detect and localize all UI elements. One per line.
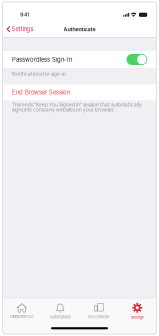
staticText: Notifications [50,315,71,319]
staticText: 9:41 [20,12,29,17]
button[interactable]: Settings [2,23,38,35]
staticText: End Browser Session [12,89,70,96]
staticText: Settings [131,315,144,319]
staticText: My Devices [88,314,109,319]
staticText: MobileIron Go [10,314,33,319]
button[interactable]: Settings [118,298,156,322]
staticText: Authenticate [63,26,95,32]
button[interactable]: End Browser Session [2,84,156,100]
button[interactable]: Notifications [41,298,79,322]
staticText: signs into company websites on your brow… [12,107,114,113]
button[interactable]: My Devices [79,299,118,322]
staticText: This ends "Keep You Signed In" session t… [12,102,142,107]
staticText: Settings [12,26,34,33]
staticText: Notifications for sign-in [12,71,66,77]
button[interactable]: MobileIron Go [2,299,41,322]
staticText: Passwordless Sign-In [12,56,72,63]
